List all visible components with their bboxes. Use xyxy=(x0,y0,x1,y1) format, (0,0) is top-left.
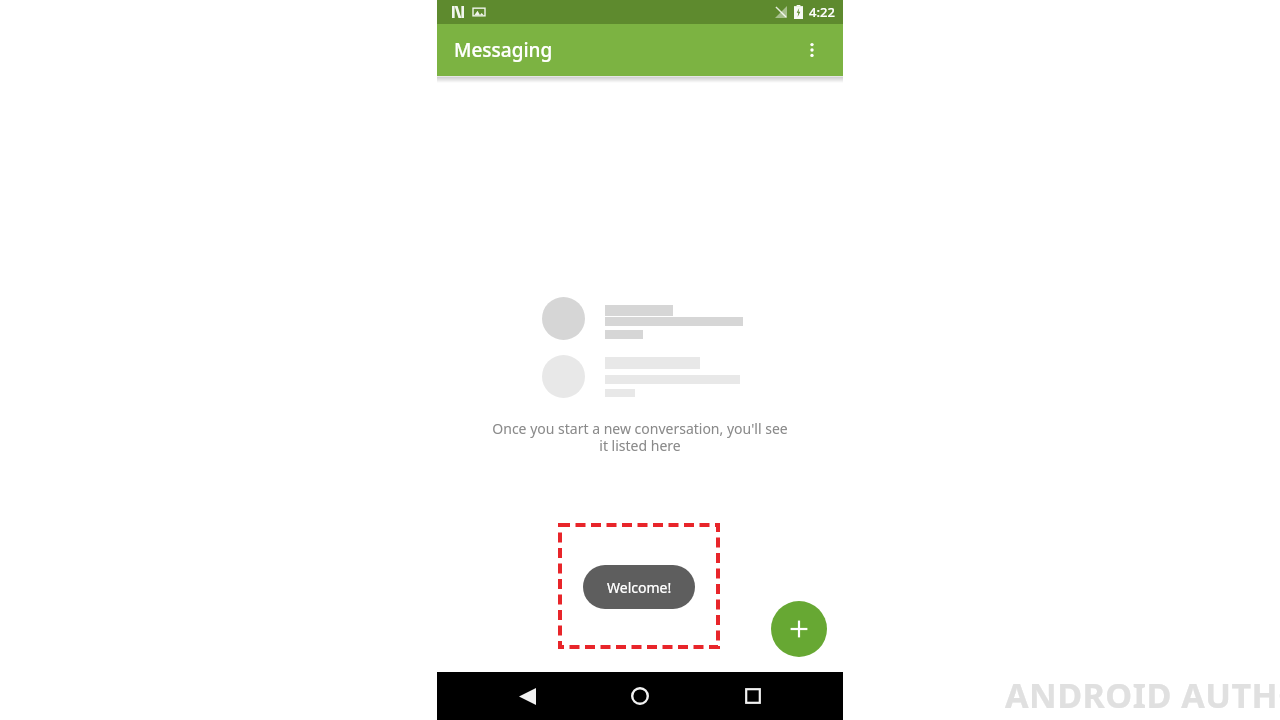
button[interactable]: Back xyxy=(505,674,549,718)
staticText: Messaging xyxy=(454,37,553,63)
staticText: ANDROID AUTHORITY xyxy=(1005,672,1280,718)
staticText: Welcome! xyxy=(607,578,672,597)
staticText: 4:22 xyxy=(809,3,835,21)
button[interactable]: Recent apps xyxy=(731,674,775,718)
button[interactable]: Home xyxy=(618,674,662,718)
button[interactable]: New conversation xyxy=(771,601,827,657)
button[interactable]: Welcome! xyxy=(583,565,695,609)
staticText: Once you start a new conversation, you'l… xyxy=(490,419,790,720)
button[interactable]: More options xyxy=(791,29,833,71)
